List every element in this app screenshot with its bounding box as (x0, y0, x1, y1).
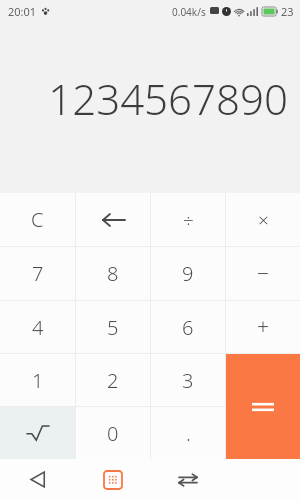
button[interactable]: 6 (151, 301, 225, 353)
staticText: 23 (281, 4, 294, 19)
staticText: 3 (182, 367, 194, 394)
staticText: . (186, 420, 191, 447)
button[interactable]: Square root (0, 407, 75, 459)
button[interactable]: 1 (0, 354, 75, 406)
staticText: 6 (182, 314, 194, 341)
button[interactable]: C (0, 193, 75, 246)
staticText: 5 (107, 314, 119, 341)
staticText: × (258, 207, 269, 233)
button[interactable]: 3 (151, 354, 225, 406)
button[interactable]: Back (0, 459, 75, 500)
staticText: ÷ (183, 207, 194, 233)
staticText: 2 (107, 367, 119, 394)
staticText: 8 (107, 260, 119, 287)
staticText: 0.04k/s (172, 5, 206, 19)
button[interactable] (226, 354, 300, 459)
staticText: 1234567890 (48, 70, 288, 127)
staticText: 1 (32, 367, 44, 394)
button[interactable]: Unit converter (150, 459, 225, 500)
button[interactable]: 8 (76, 247, 150, 300)
button[interactable]: − (226, 247, 300, 300)
button[interactable]: 0 (76, 407, 150, 459)
staticText: + (257, 313, 269, 342)
staticText: 4 (32, 314, 44, 341)
button[interactable]: ÷ (151, 193, 225, 246)
button[interactable]: 5 (76, 301, 150, 353)
staticText: 7 (32, 260, 44, 287)
staticText: − (257, 259, 269, 288)
button[interactable]: × (226, 193, 300, 246)
staticText: 20:01 (8, 4, 37, 19)
staticText: 9 (182, 260, 194, 287)
staticText: 0 (107, 420, 119, 447)
button[interactable]: 7 (0, 247, 75, 300)
button[interactable]: + (226, 301, 300, 353)
button[interactable]: 4 (0, 301, 75, 353)
staticText: C (31, 206, 44, 233)
button[interactable]: 2 (76, 354, 150, 406)
button[interactable]: . (151, 407, 225, 459)
button[interactable]: Backspace (76, 193, 150, 246)
button[interactable]: Calculator (75, 459, 150, 500)
button[interactable]: 9 (151, 247, 225, 300)
